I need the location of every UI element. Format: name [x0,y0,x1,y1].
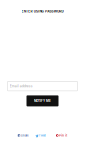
button[interactable]: Share on Twitter [35,134,46,137]
staticText: Share [21,134,28,137]
button[interactable]: NOTIFY ME [26,95,58,106]
button[interactable]: Pin on Pinterest [56,134,67,137]
button[interactable]: Share on Facebook [18,134,28,137]
staticText: Pin it [59,134,67,137]
staticText: ENTER USING PASSWORD [22,9,63,13]
staticText: NOTIFY ME [34,99,51,103]
staticText: Email address [10,84,33,88]
button[interactable]: Email address [7,81,77,91]
staticText: Tweet [39,134,46,137]
